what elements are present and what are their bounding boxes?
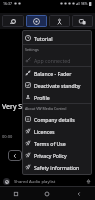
staticText: Shared Audio playlist: [14, 179, 56, 185]
staticText: Safety information: [34, 164, 80, 171]
staticText: About VW Media Control: [25, 106, 92, 111]
staticText: Licences: [34, 128, 55, 135]
staticText: Privacy Policy: [34, 152, 67, 159]
button[interactable]: Assistant: [49, 15, 70, 27]
button[interactable]: Home: [31, 187, 63, 200]
staticText: Very S: [2, 102, 23, 112]
button[interactable]: Back: [63, 187, 95, 200]
button[interactable]: Devices: [72, 15, 93, 27]
staticText: Balance - Fader: [34, 70, 72, 77]
button[interactable]: Deactivate standby: [22, 79, 92, 91]
staticText: Company details: [34, 116, 75, 123]
button[interactable]: Safety information: [22, 161, 92, 173]
staticText: Settings: [25, 47, 92, 52]
staticText: Terms of Use: [34, 140, 66, 147]
button[interactable]: Audio source: [2, 15, 24, 27]
staticText: Tutorial: [34, 35, 53, 42]
button[interactable]: Settings: [26, 15, 47, 27]
button[interactable]: Profile: [22, 91, 92, 103]
staticText: App connected: [34, 57, 71, 64]
staticText: Profile: [34, 94, 50, 101]
staticText: 98%: [81, 2, 88, 6]
button[interactable]: App connected: [22, 54, 92, 66]
button[interactable]: Balance - Fader: [22, 67, 92, 79]
button[interactable]: Share: [85, 178, 92, 185]
button[interactable]: Terms of Use: [22, 137, 92, 149]
staticText: 00:00: [2, 134, 13, 139]
staticText: Deactivate standby: [34, 82, 81, 89]
button[interactable]: Recent apps: [0, 187, 31, 200]
button[interactable]: Tutorial: [22, 32, 92, 44]
staticText: 16:37: [3, 1, 12, 6]
button[interactable]: Licences: [22, 125, 92, 137]
button[interactable]: Previous: [8, 150, 22, 161]
button[interactable]: Privacy Policy: [22, 149, 92, 161]
button[interactable]: Company details: [22, 113, 92, 125]
button[interactable]: Shared Audio playlist: [0, 176, 95, 187]
